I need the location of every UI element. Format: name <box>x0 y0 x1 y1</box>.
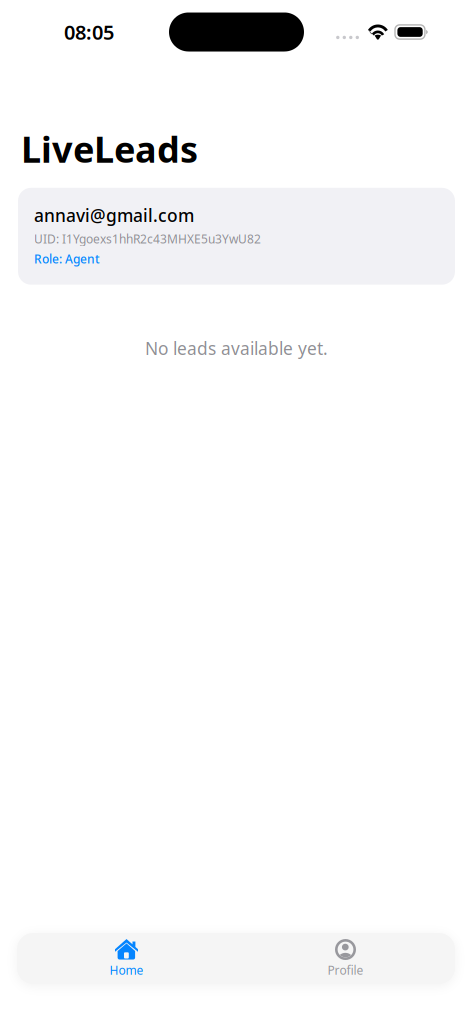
staticText: Profile <box>327 962 363 978</box>
staticText: UID: I1Ygoexs1hhR2c43MHXE5u3YwU82 <box>34 231 261 247</box>
staticText: annavi@gmail.com <box>34 204 194 227</box>
staticText: Home <box>109 962 143 978</box>
staticText: Role: Agent <box>34 251 100 267</box>
button[interactable]: Profile <box>236 933 455 984</box>
staticText: LiveLeads <box>21 125 198 173</box>
staticText: No leads available yet. <box>145 337 328 360</box>
staticText: 08:05 <box>64 19 114 45</box>
button[interactable]: Home <box>17 933 236 984</box>
